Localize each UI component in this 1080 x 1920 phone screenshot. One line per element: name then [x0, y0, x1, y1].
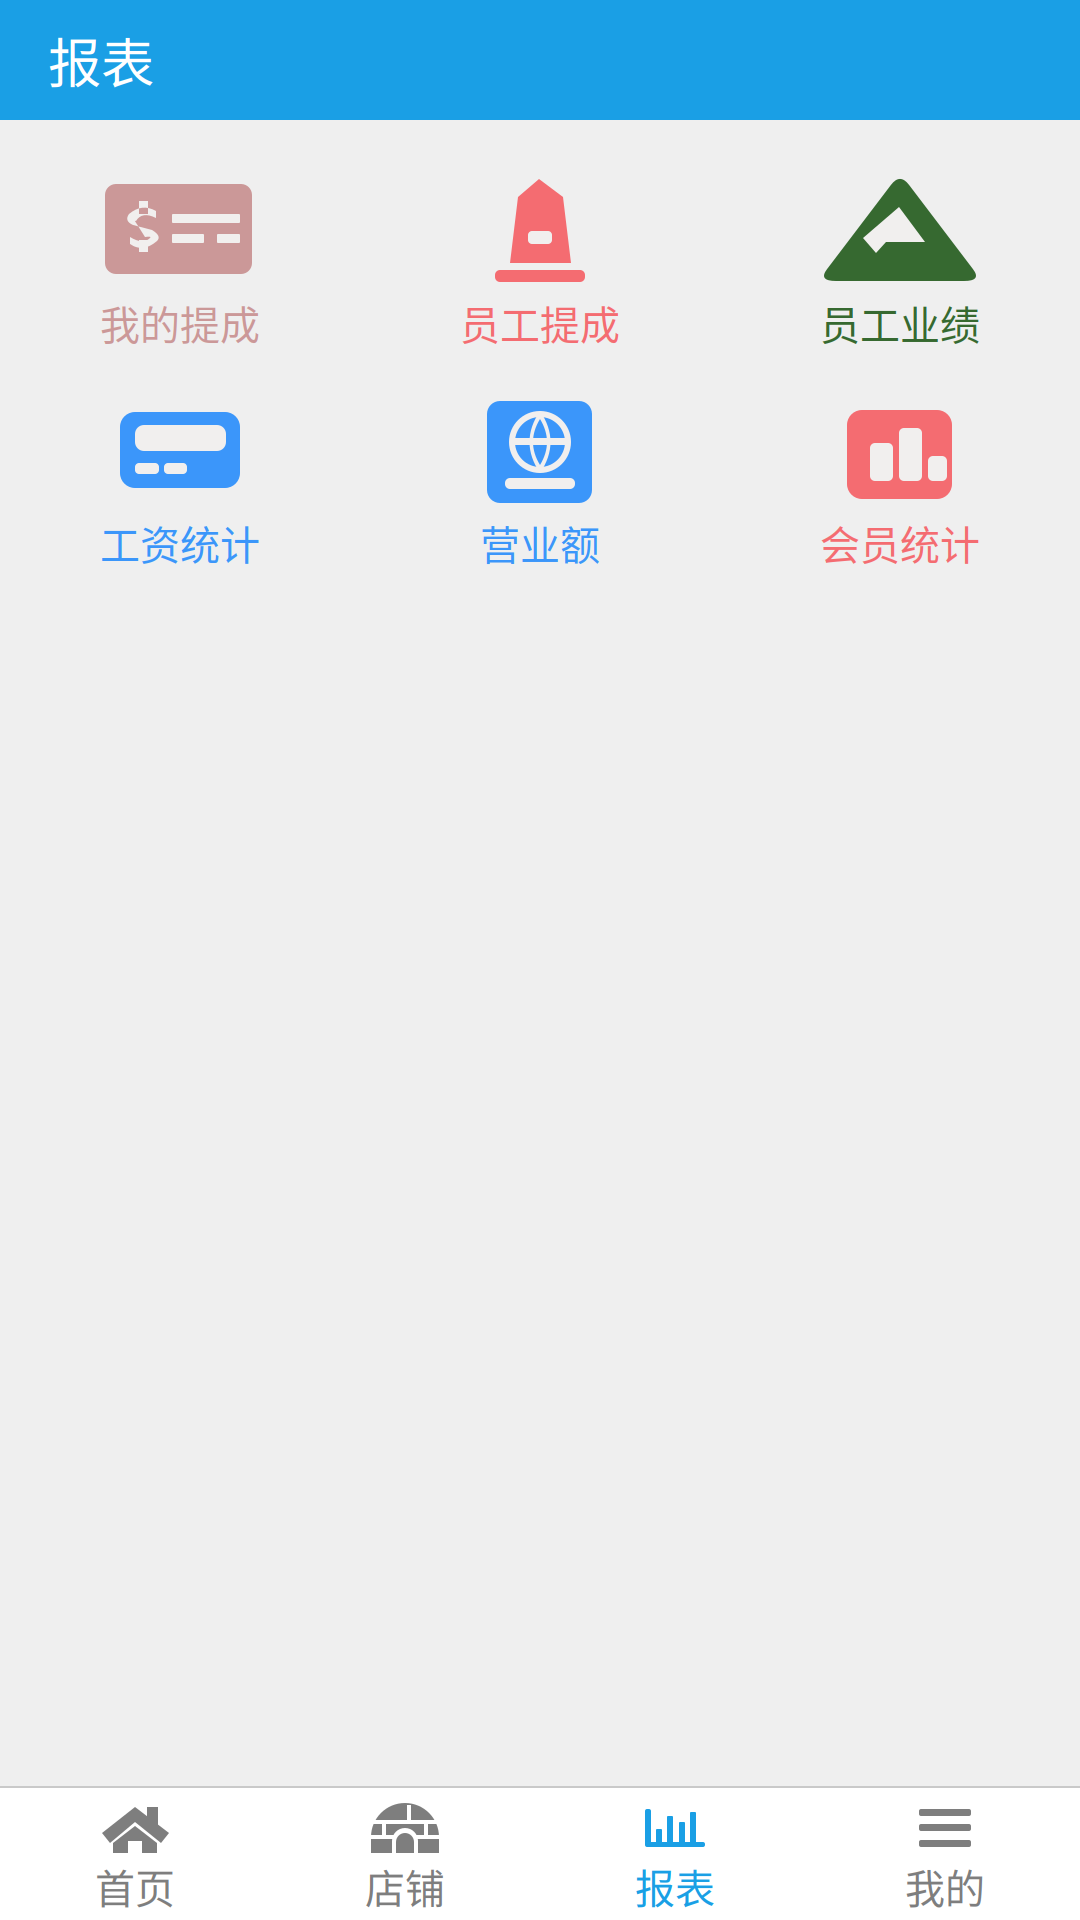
button[interactable]: 工资统计 [0, 340, 360, 560]
button[interactable]: 我的 [810, 1788, 1080, 1920]
staticText: 工资统计 [100, 513, 260, 571]
staticText: 首页 [95, 1857, 175, 1915]
button[interactable]: 报表 [540, 1788, 810, 1920]
button[interactable]: 店铺 [270, 1788, 540, 1920]
staticText: 报表 [48, 21, 154, 99]
button[interactable]: 我的提成 [0, 120, 360, 340]
staticText: 员工业绩 [820, 293, 980, 351]
button[interactable]: 营业额 [360, 340, 720, 560]
button[interactable]: 首页 [0, 1788, 270, 1920]
staticText: 店铺 [365, 1857, 445, 1915]
button[interactable]: 会员统计 [720, 340, 1080, 560]
staticText: 营业额 [480, 513, 600, 571]
button[interactable]: 员工提成 [360, 120, 720, 340]
staticText: 会员统计 [820, 513, 980, 571]
staticText: 我的提成 [100, 293, 260, 351]
staticText: 报表 [635, 1857, 715, 1915]
staticText: 员工提成 [460, 293, 620, 351]
button[interactable]: 员工业绩 [720, 120, 1080, 340]
staticText: 我的 [905, 1857, 985, 1915]
